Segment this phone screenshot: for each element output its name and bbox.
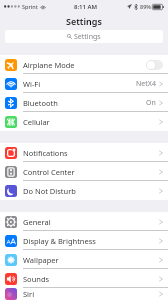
button[interactable]: Sounds (0, 269, 168, 288)
staticText: Cellular (23, 117, 50, 127)
staticText: Display & Brightness (23, 236, 96, 246)
button[interactable]: Siri (0, 288, 168, 300)
button[interactable]: Wallpaper (0, 250, 168, 269)
staticText: Wi-Fi (23, 79, 41, 89)
button[interactable]: Airplane Mode (0, 55, 168, 74)
staticText: Airplane Mode (23, 60, 75, 70)
staticText: Sounds (23, 274, 50, 284)
button[interactable]: Display & Brightness (0, 231, 168, 250)
button[interactable]: Notifications (0, 143, 168, 162)
staticText: 8:11 AM (74, 3, 98, 11)
staticText: Sprint (22, 3, 38, 10)
staticText: Settings (66, 15, 102, 27)
staticText: Wallpaper (23, 255, 59, 265)
staticText: Siri (23, 289, 35, 299)
staticText: General (23, 217, 51, 227)
staticText: Bluetooth (23, 98, 58, 108)
button[interactable]: Bluetooth (0, 93, 168, 112)
button[interactable]: Cellular (0, 112, 168, 131)
staticText: 89% (140, 3, 151, 10)
staticText: Settings (74, 32, 101, 42)
staticText: Notifications (23, 148, 68, 158)
button[interactable]: Wi-Fi (0, 74, 168, 93)
staticText: NetX4 (136, 79, 156, 89)
staticText: Control Center (23, 167, 75, 177)
button[interactable]: Settings (5, 30, 163, 43)
staticText: On (146, 98, 156, 108)
button[interactable]: General (0, 212, 168, 231)
button[interactable]: Airplane Mode (146, 60, 163, 70)
button[interactable]: Do Not Disturb (0, 181, 168, 200)
button[interactable]: Control Center (0, 162, 168, 181)
staticText: Do Not Disturb (23, 186, 76, 196)
